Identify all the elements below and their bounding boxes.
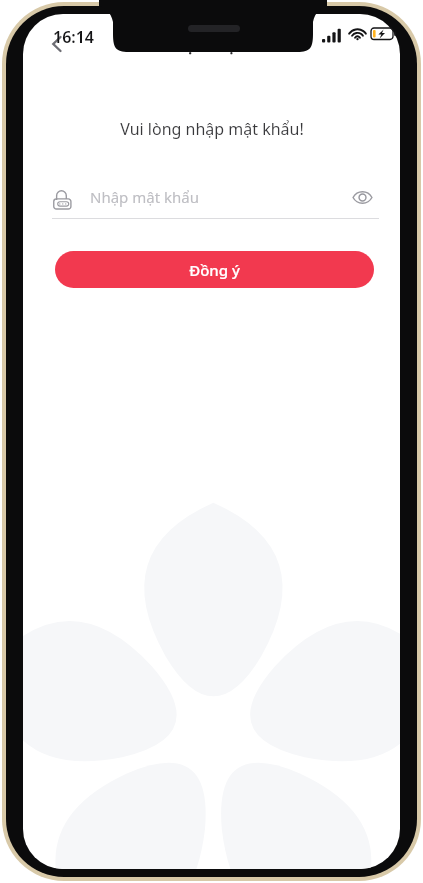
button[interactable]: Đồng ý xyxy=(55,251,374,288)
button[interactable]: Show password xyxy=(345,180,379,214)
button[interactable]: Nhập mật khẩu xyxy=(52,176,379,218)
staticText: 16:14 xyxy=(53,26,95,48)
staticText: Nhập mật khẩu xyxy=(90,187,345,207)
staticText: Vui lòng nhập mật khẩu! xyxy=(120,118,304,140)
button[interactable]: Back xyxy=(35,22,79,66)
staticText: Xác thực mật khẩu xyxy=(133,33,290,56)
staticText: Đồng ý xyxy=(189,260,240,280)
